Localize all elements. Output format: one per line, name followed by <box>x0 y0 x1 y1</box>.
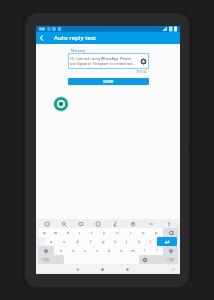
staticText: q <box>43 230 46 236</box>
button[interactable]: j <box>121 237 133 246</box>
staticText: s <box>63 239 66 245</box>
staticText: f <box>90 239 92 245</box>
button[interactable]: n <box>115 246 127 255</box>
button[interactable]: r <box>74 228 86 237</box>
button[interactable]: sticker <box>89 220 106 227</box>
button[interactable]: p <box>150 228 163 237</box>
staticText: h <box>114 239 117 245</box>
staticText: k <box>138 239 141 245</box>
staticText: p <box>155 230 158 236</box>
staticText: Hi, I am not using WhatsApp. Please use … <box>70 56 137 66</box>
button[interactable]: gif <box>72 220 89 227</box>
button[interactable]: i <box>124 228 137 237</box>
staticText: j <box>126 239 128 245</box>
button[interactable]: Message <box>68 48 149 74</box>
button[interactable]: search <box>55 220 72 227</box>
staticText: m <box>131 248 135 254</box>
button[interactable]: Back <box>72 265 82 274</box>
button[interactable]: q <box>38 228 50 237</box>
button[interactable]: shift <box>163 246 178 255</box>
button[interactable]: Recording indicator <box>53 96 69 112</box>
button[interactable]: g <box>97 237 109 246</box>
button[interactable]: u <box>111 228 124 237</box>
button[interactable]: f <box>84 237 97 246</box>
button[interactable]: z <box>54 246 67 255</box>
button[interactable]: w <box>50 228 62 237</box>
staticText: , <box>58 258 59 262</box>
staticText: n <box>120 248 123 254</box>
button[interactable]: ?123 <box>163 255 178 264</box>
button[interactable]: ?123 <box>38 255 52 264</box>
button[interactable]: ! <box>139 246 151 255</box>
staticText: i <box>130 230 132 236</box>
button[interactable]: mic <box>160 220 178 227</box>
button[interactable]: SEND <box>68 78 149 85</box>
button[interactable]: emoji <box>124 220 142 227</box>
staticText: d <box>76 239 79 245</box>
staticText: r <box>79 230 81 236</box>
button[interactable]: m <box>127 246 139 255</box>
button[interactable]: o <box>137 228 150 237</box>
button[interactable]: del <box>163 228 178 237</box>
button[interactable]: e <box>62 228 74 237</box>
button[interactable]: shift <box>38 246 54 255</box>
staticText: x <box>72 248 75 254</box>
staticText: l <box>150 239 152 245</box>
button[interactable]: Emoji <box>139 255 151 264</box>
button[interactable]: Home <box>97 265 107 274</box>
button[interactable]: x <box>67 246 79 255</box>
staticText: 76/100 <box>136 70 147 74</box>
staticText: v <box>96 248 99 254</box>
staticText: a <box>50 239 53 245</box>
button[interactable]: a <box>45 237 58 246</box>
button[interactable]: b <box>103 246 115 255</box>
button[interactable]: t <box>86 228 98 237</box>
staticText: y <box>103 230 106 236</box>
staticText: z <box>60 248 62 254</box>
button[interactable]: d <box>71 237 84 246</box>
staticText: Auto reply test <box>54 34 97 42</box>
button[interactable]: Hide keyboard <box>168 265 178 274</box>
button[interactable]: ? <box>151 246 163 255</box>
staticText: ! <box>144 248 146 254</box>
staticText: c <box>84 248 87 254</box>
button[interactable]: clip <box>106 220 124 227</box>
staticText: ?123 <box>167 258 174 262</box>
button[interactable]: Back <box>36 32 48 44</box>
button[interactable]: more <box>142 220 160 227</box>
staticText: t <box>91 230 93 236</box>
staticText: SEND <box>103 79 114 84</box>
staticText: . <box>157 258 158 262</box>
staticText: u <box>116 230 119 236</box>
staticText: ?123 <box>42 258 49 262</box>
button[interactable]: h <box>109 237 121 246</box>
staticText: w <box>54 230 58 236</box>
button[interactable]: Settings <box>139 57 147 65</box>
staticText: g <box>102 239 105 245</box>
staticText: e <box>67 230 70 236</box>
staticText: ? <box>156 248 158 254</box>
button[interactable]: v <box>91 246 103 255</box>
button[interactable]: y <box>98 228 111 237</box>
button[interactable]: g <box>38 220 55 227</box>
button[interactable]: k <box>133 237 145 246</box>
button[interactable]: s <box>58 237 71 246</box>
button[interactable]: c <box>79 246 91 255</box>
staticText: o <box>142 230 145 236</box>
button[interactable]: Recents <box>122 265 132 274</box>
button[interactable]: l <box>145 237 157 246</box>
staticText: Message <box>71 48 86 53</box>
staticText: b <box>108 248 111 254</box>
button[interactable]: enter <box>157 237 177 246</box>
